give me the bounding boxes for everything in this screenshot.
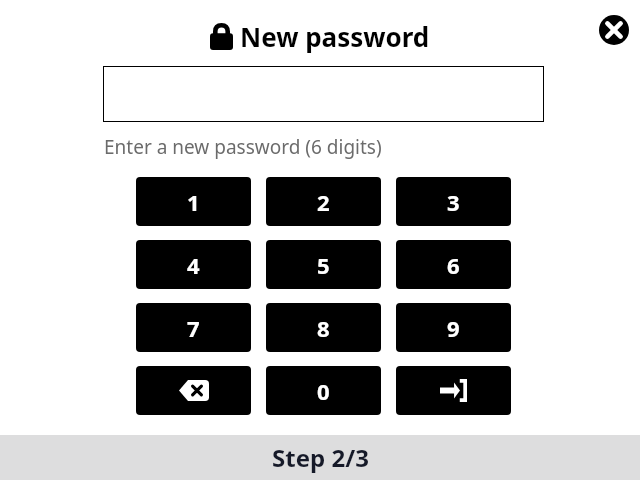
button[interactable]: Backspace — [136, 366, 251, 415]
button[interactable]: 6 — [396, 240, 511, 289]
staticText: 2 — [317, 187, 330, 217]
button[interactable]: 8 — [266, 303, 381, 352]
staticText: 3 — [447, 187, 460, 217]
staticText: 8 — [317, 313, 330, 343]
button[interactable]: 0 — [266, 366, 381, 415]
button[interactable]: Enter — [396, 366, 511, 415]
staticText: New password — [240, 19, 430, 54]
button[interactable]: 5 — [266, 240, 381, 289]
button[interactable]: 7 — [136, 303, 251, 352]
staticText: 5 — [317, 250, 330, 280]
button[interactable]: 1 — [136, 177, 251, 226]
button[interactable]: Close — [596, 12, 632, 48]
staticText: Step 2/3 — [272, 441, 369, 474]
button[interactable]: 3 — [396, 177, 511, 226]
staticText: 6 — [447, 250, 460, 280]
staticText: 4 — [187, 250, 200, 280]
button[interactable]: 2 — [266, 177, 381, 226]
button[interactable] — [103, 66, 544, 122]
staticText: 0 — [317, 376, 330, 406]
staticText: 1 — [187, 187, 200, 217]
staticText: Enter a new password (6 digits) — [104, 134, 382, 160]
staticText: 9 — [447, 313, 460, 343]
staticText: 7 — [187, 313, 200, 343]
button[interactable]: 4 — [136, 240, 251, 289]
button[interactable]: 9 — [396, 303, 511, 352]
